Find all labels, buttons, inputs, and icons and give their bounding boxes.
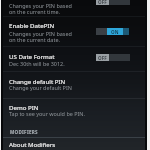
button[interactable]: Changes your PIN based	[0, 0, 150, 16]
staticText: Enable DatePIN	[9, 21, 55, 29]
button[interactable]: About Modifiers	[0, 138, 150, 150]
staticText: OFF	[98, 0, 107, 5]
staticText: Tap to see your would be PIN.	[9, 110, 85, 117]
button[interactable]: Demo PIN	[0, 98, 150, 123]
staticText: US Date Format	[9, 52, 55, 60]
staticText: Demo PIN	[9, 103, 39, 111]
staticText: on the current date.	[9, 36, 60, 43]
staticText: ON	[111, 29, 119, 35]
staticText: on the current time.	[9, 8, 60, 15]
staticText: Change default PIN	[9, 77, 66, 85]
staticText: MODIFIERS	[10, 129, 38, 135]
staticText: Dec 30th will be 3012.	[9, 60, 65, 67]
staticText: Changes your PIN based	[9, 30, 72, 37]
button[interactable]: Change default PIN	[0, 72, 150, 97]
staticText: Change your default PIN	[9, 84, 72, 91]
staticText: OFF	[98, 55, 107, 61]
button[interactable]: US Date Format	[0, 47, 150, 71]
staticText: About Modifiers	[9, 140, 56, 148]
staticText: Changes your PIN based	[9, 2, 72, 9]
button[interactable]: Enable DatePIN	[0, 17, 150, 46]
